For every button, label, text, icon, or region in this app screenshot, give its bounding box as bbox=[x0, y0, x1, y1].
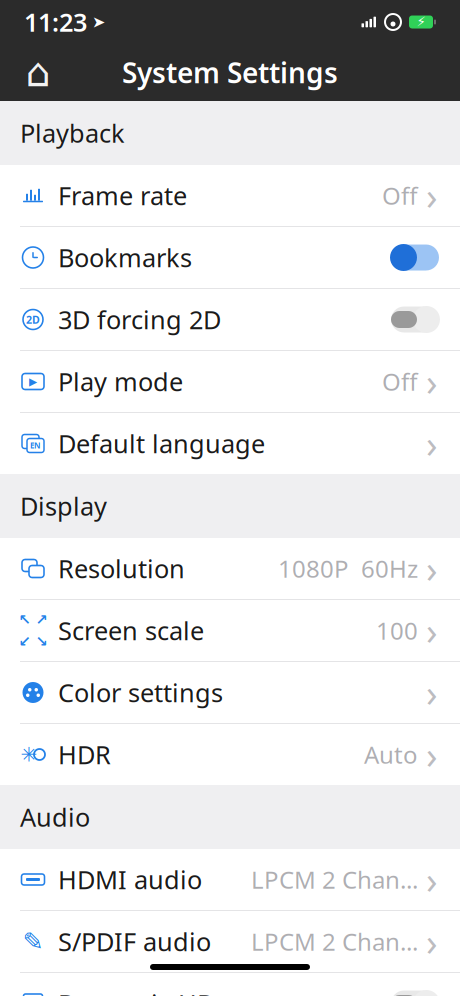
staticText: System Settings bbox=[122, 54, 338, 91]
staticText: HDMI audio bbox=[58, 863, 202, 896]
staticText: Auto bbox=[364, 739, 418, 770]
staticText: Resolution bbox=[58, 552, 185, 585]
staticText: Frame rate bbox=[58, 179, 187, 212]
button[interactable]: ✳ bbox=[0, 724, 460, 785]
staticText: Color settings bbox=[58, 676, 223, 709]
staticText: Playback bbox=[20, 116, 125, 150]
staticText: › bbox=[426, 357, 438, 406]
staticText: 2D bbox=[26, 312, 40, 327]
staticText: ↘ bbox=[35, 633, 47, 650]
staticText: ✎ bbox=[22, 927, 43, 956]
staticText: › bbox=[426, 855, 438, 904]
staticText: ↙ bbox=[18, 633, 30, 650]
button[interactable]: Color settings bbox=[0, 662, 460, 723]
staticText: S/PDIF audio bbox=[58, 925, 211, 958]
staticText: Display bbox=[20, 489, 107, 523]
staticText: 100 bbox=[376, 615, 418, 646]
staticText: ➤ bbox=[87, 13, 105, 31]
button[interactable]: ↖ bbox=[0, 600, 460, 661]
button[interactable]: ▶ bbox=[0, 351, 460, 412]
staticText: Screen scale bbox=[58, 614, 204, 647]
staticText: 11:23 bbox=[24, 5, 87, 39]
button[interactable]: Home bbox=[16, 50, 60, 94]
staticText: HDR bbox=[58, 738, 111, 771]
staticText: ⌂ bbox=[25, 50, 50, 95]
staticText: ⚡︎ bbox=[416, 14, 425, 29]
staticText: › bbox=[426, 917, 438, 966]
staticText: › bbox=[426, 419, 438, 468]
staticText: Default language bbox=[58, 427, 265, 460]
staticText: › bbox=[426, 730, 438, 779]
staticText: ✳ bbox=[20, 743, 37, 766]
staticText: 1080P 60Hz bbox=[278, 553, 418, 584]
staticText: Downmix HD bbox=[58, 987, 215, 996]
staticText: › bbox=[426, 606, 438, 655]
staticText: › bbox=[426, 668, 438, 717]
staticText: ↖ bbox=[18, 611, 30, 628]
button[interactable]: Bookmarks bbox=[0, 227, 460, 288]
staticText: LPCM 2 Chan... bbox=[251, 926, 418, 957]
staticText: Off bbox=[382, 180, 418, 211]
staticText: ↗ bbox=[35, 611, 47, 628]
staticText: › bbox=[426, 171, 438, 220]
staticText: ▶ bbox=[29, 375, 37, 387]
staticText: Play mode bbox=[58, 365, 183, 398]
staticText: LPCM 2 Chan... bbox=[251, 864, 418, 895]
button[interactable]: ◁ bbox=[0, 973, 460, 996]
staticText: Bookmarks bbox=[58, 241, 192, 274]
button[interactable]: Frame rate bbox=[0, 165, 460, 226]
button[interactable]: ✎ bbox=[0, 911, 460, 972]
staticText: Audio bbox=[20, 800, 90, 834]
button[interactable]: EN bbox=[0, 413, 460, 474]
button[interactable]: HDMI audio bbox=[0, 849, 460, 910]
staticText: EN bbox=[30, 440, 41, 451]
staticText: Off bbox=[382, 366, 418, 397]
button[interactable]: 2D bbox=[0, 289, 460, 350]
button[interactable]: Resolution bbox=[0, 538, 460, 599]
staticText: 3D forcing 2D bbox=[58, 303, 221, 336]
staticText: › bbox=[426, 544, 438, 593]
